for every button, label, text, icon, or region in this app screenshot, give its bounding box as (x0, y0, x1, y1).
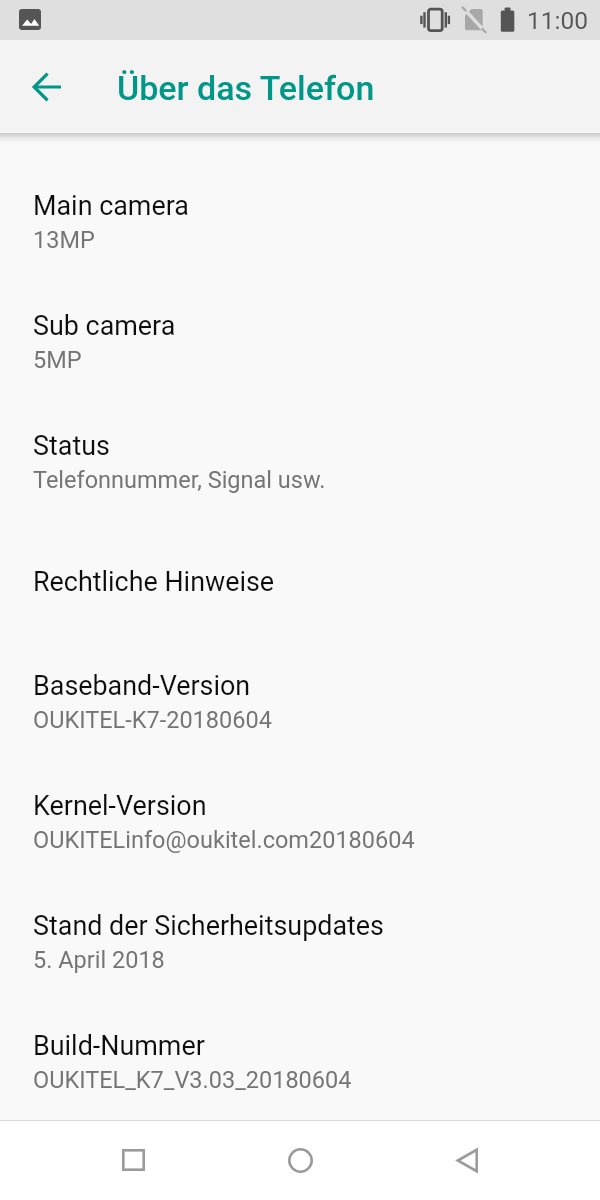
staticText: 11:00 (527, 6, 589, 35)
staticText: 5. April 2018 (33, 946, 165, 974)
staticText: Sub camera (33, 310, 176, 342)
staticText: Telefonnummer, Signal usw. (33, 466, 326, 494)
staticText: 5MP (33, 346, 82, 374)
staticText: OUKITELinfo@oukitel.com20180604 (33, 826, 415, 854)
staticText: Status (33, 430, 110, 462)
button[interactable]: Rechtliche Hinweise (0, 520, 600, 640)
staticText: Baseband-Version (33, 670, 251, 702)
staticText: Main camera (33, 190, 189, 222)
staticText: 13MP (33, 226, 95, 254)
staticText: Rechtliche Hinweise (33, 566, 275, 598)
staticText: Build-Nummer (33, 1030, 205, 1062)
staticText: Stand der Sicherheitsupdates (33, 910, 384, 942)
staticText: OUKITEL_K7_V3.03_20180604 (33, 1066, 352, 1094)
staticText: OUKITEL-K7-20180604 (33, 706, 272, 734)
button[interactable]: Sub camera (0, 280, 600, 400)
button[interactable]: Übersicht (103, 1130, 163, 1190)
button[interactable]: Stand der Sicherheitsupdates (0, 880, 600, 1000)
button[interactable]: Zurück (19, 59, 75, 115)
button[interactable]: Status (0, 400, 600, 520)
button[interactable]: Startbildschirm (270, 1130, 330, 1190)
button[interactable]: Baseband-Version (0, 640, 600, 760)
staticText: Über das Telefon (117, 68, 375, 108)
staticText: Kernel-Version (33, 790, 207, 822)
button[interactable]: Main camera (0, 160, 600, 280)
button[interactable]: Build-Nummer (0, 1000, 600, 1120)
button[interactable]: Zurück (437, 1130, 497, 1190)
button[interactable]: Kernel-Version (0, 760, 600, 880)
